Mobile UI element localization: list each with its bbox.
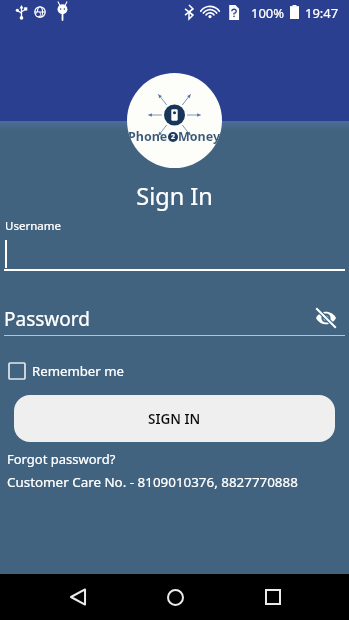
button[interactable]: Password field [4,300,304,336]
button[interactable]: Recents [250,574,296,620]
button[interactable]: Show password [311,303,341,333]
staticText: Password [4,306,90,332]
staticText: 2 [171,132,176,142]
button[interactable]: Username field [4,236,345,271]
staticText: Sign In [0,180,349,212]
button[interactable]: Back [55,574,101,620]
button[interactable]: SIGN IN [14,395,335,442]
button[interactable]: Forgot password? [7,450,116,468]
staticText: Customer Care No. - 8109010376, 88277708… [7,473,298,491]
staticText: 100% [251,4,285,22]
staticText: Money [178,128,221,145]
staticText: Phone [128,128,168,145]
button[interactable]: Remember me [5,359,127,383]
staticText: Remember me [32,362,124,380]
staticText: Username [5,218,61,234]
staticText: 19:47 [305,4,339,22]
button[interactable]: Home [152,574,198,620]
staticText: SIGN IN [148,410,201,428]
